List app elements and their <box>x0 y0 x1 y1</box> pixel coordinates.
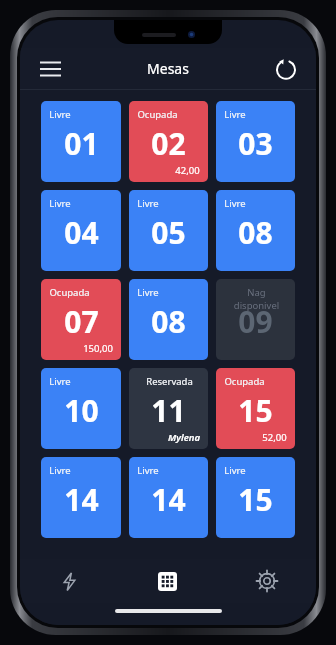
staticText: 07 <box>64 301 99 342</box>
button[interactable]: Livre <box>216 190 295 271</box>
button[interactable]: Livre <box>129 279 208 360</box>
button[interactable]: Menu <box>33 52 67 86</box>
staticText: Livre <box>224 197 246 210</box>
staticText: Livre <box>137 197 159 210</box>
button[interactable]: Ocupada <box>41 279 121 360</box>
staticText: Livre <box>137 464 159 477</box>
staticText: 01 <box>64 123 99 164</box>
staticText: Ocupada <box>224 375 265 388</box>
staticText: Ocupada <box>137 108 178 121</box>
button[interactable]: Settings <box>217 559 316 603</box>
staticText: 42,00 <box>175 164 200 177</box>
staticText: Livre <box>137 286 159 299</box>
staticText: Livre <box>49 464 71 477</box>
staticText: 11 <box>151 390 186 431</box>
staticText: Livre <box>224 108 246 121</box>
staticText: Livre <box>49 375 71 388</box>
button[interactable]: Livre <box>41 190 121 271</box>
staticText: Ocupada <box>49 286 90 299</box>
button[interactable]: Livre <box>216 101 295 182</box>
staticText: 10 <box>64 390 99 431</box>
staticText: Livre <box>49 108 71 121</box>
button[interactable]: Refresh <box>269 52 303 86</box>
staticText: 08 <box>238 212 273 253</box>
staticText: 14 <box>151 479 186 520</box>
staticText: Livre <box>49 197 71 210</box>
button[interactable]: Livre <box>129 457 208 538</box>
button[interactable]: Livre <box>41 457 121 538</box>
staticText: 05 <box>151 212 186 253</box>
button[interactable]: Livre <box>129 190 208 271</box>
staticText: 14 <box>64 479 99 520</box>
staticText: 02 <box>151 123 186 164</box>
button[interactable]: Livre <box>216 457 295 538</box>
button[interactable]: Livre <box>41 368 121 449</box>
button[interactable]: Livre <box>41 101 121 182</box>
staticText: Reservada <box>146 375 193 388</box>
button[interactable]: Ocupada <box>129 101 208 182</box>
staticText: 03 <box>238 123 273 164</box>
button[interactable]: Reservada <box>129 368 208 449</box>
button[interactable]: Nag disponivel <box>216 279 295 360</box>
staticText: 150,00 <box>83 342 113 355</box>
staticText: 52,00 <box>262 431 287 444</box>
staticText: 04 <box>64 212 99 253</box>
button[interactable]: Tables <box>118 559 217 603</box>
staticText: 08 <box>151 301 186 342</box>
staticText: Mylena <box>168 431 200 444</box>
staticText: 15 <box>238 390 273 431</box>
staticText: Livre <box>224 464 246 477</box>
staticText: Nag disponivel <box>224 286 289 312</box>
staticText: 15 <box>238 479 273 520</box>
button[interactable]: Ocupada <box>216 368 295 449</box>
staticText: 09 <box>238 301 273 342</box>
staticText: Mesas <box>147 59 189 78</box>
button[interactable]: Quick actions <box>20 559 118 603</box>
